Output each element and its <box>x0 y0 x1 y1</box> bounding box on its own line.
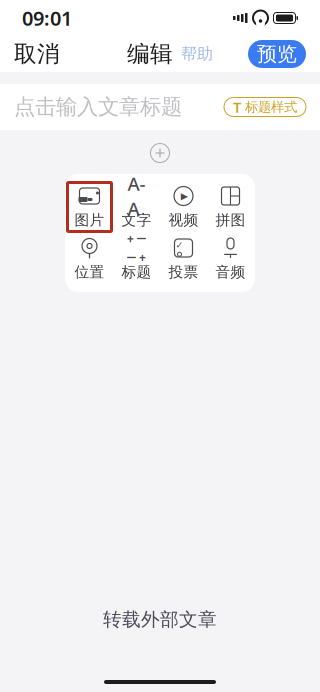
button[interactable]: + <box>113 233 160 285</box>
staticText: AA <box>127 171 145 221</box>
staticText: 标题 <box>121 263 151 281</box>
staticText: 文字 <box>121 211 151 229</box>
staticText: T <box>233 97 241 117</box>
button[interactable]: 预览 <box>248 40 306 68</box>
staticText: + <box>127 231 134 246</box>
button[interactable]: 取消 <box>0 36 74 72</box>
staticText: ✓ <box>175 240 183 250</box>
button[interactable]: AA <box>113 181 160 233</box>
staticText: 取消 <box>14 40 60 68</box>
button[interactable]: 转载外部文章 <box>87 600 233 639</box>
staticText: 拼图 <box>215 211 245 229</box>
staticText: 图片 <box>74 211 104 229</box>
staticText: 音频 <box>215 263 245 281</box>
staticText: + <box>139 249 146 265</box>
staticText: 预览 <box>257 42 297 66</box>
staticText: 视频 <box>168 211 198 229</box>
button[interactable]: 图片 <box>66 181 113 233</box>
button[interactable]: 音频 <box>207 233 254 285</box>
button[interactable]: 拼图 <box>207 181 254 233</box>
button[interactable]: ▶ <box>160 181 207 233</box>
staticText: 点击输入文章标题 <box>14 94 182 120</box>
staticText: 标题样式 <box>245 99 297 115</box>
staticText: 投票 <box>168 263 198 281</box>
button[interactable]: 添加内容 <box>143 140 177 166</box>
staticText: 编辑 <box>127 40 173 68</box>
staticText: ▶ <box>181 191 188 201</box>
staticText: 帮助 <box>181 44 213 64</box>
staticText: 09:01 <box>22 5 72 31</box>
button[interactable]: ✓ <box>160 233 207 285</box>
staticText: 转载外部文章 <box>103 608 217 631</box>
button[interactable]: 帮助 <box>179 38 215 70</box>
button[interactable]: T <box>224 97 306 116</box>
staticText: 位置 <box>74 263 104 281</box>
button[interactable]: 位置 <box>66 233 113 285</box>
